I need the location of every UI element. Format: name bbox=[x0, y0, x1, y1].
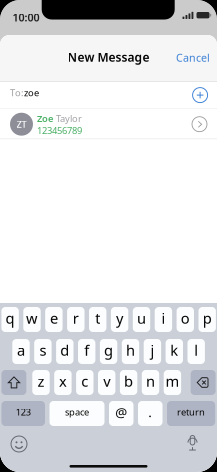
staticText: h bbox=[126, 340, 135, 360]
button[interactable]: a bbox=[12, 339, 30, 364]
button[interactable]: c bbox=[76, 370, 93, 395]
staticText: Taylor bbox=[56, 112, 82, 125]
button[interactable]: j bbox=[144, 339, 161, 364]
button[interactable]: l bbox=[187, 339, 205, 364]
staticText: ZT bbox=[16, 118, 26, 130]
button[interactable]: q bbox=[1, 307, 19, 332]
button[interactable]: space bbox=[49, 401, 104, 426]
button[interactable]: 123 bbox=[1, 401, 45, 426]
staticText: s bbox=[39, 340, 46, 360]
staticText: w bbox=[26, 308, 38, 328]
staticText: r bbox=[73, 308, 79, 328]
staticText: Zoe bbox=[37, 112, 53, 125]
staticText: c bbox=[81, 371, 88, 391]
button[interactable]: u bbox=[133, 307, 150, 332]
staticText: l bbox=[194, 340, 198, 360]
button[interactable]: Add contact bbox=[192, 87, 208, 103]
staticText: a bbox=[17, 340, 25, 360]
button[interactable]: e bbox=[45, 307, 63, 332]
staticText: i bbox=[161, 308, 165, 328]
button[interactable]: Dictation bbox=[186, 435, 199, 452]
button[interactable]: v bbox=[98, 370, 115, 395]
staticText: Cancel bbox=[176, 50, 210, 65]
button[interactable]: @ bbox=[109, 401, 133, 426]
staticText: k bbox=[170, 340, 178, 360]
button[interactable]: Shift bbox=[1, 370, 26, 395]
staticText: t bbox=[95, 308, 100, 328]
button[interactable]: r bbox=[67, 307, 84, 332]
button[interactable]: Emoji keyboard bbox=[11, 436, 27, 452]
staticText: y bbox=[116, 308, 123, 328]
staticText: u bbox=[137, 308, 146, 328]
button[interactable]: x bbox=[54, 370, 72, 395]
button[interactable]: ZT bbox=[0, 109, 217, 139]
staticText: 123 bbox=[16, 406, 31, 418]
button[interactable]: k bbox=[166, 339, 183, 364]
staticText: o bbox=[181, 308, 190, 328]
staticText: b bbox=[124, 371, 133, 391]
button[interactable]: h bbox=[122, 339, 139, 364]
staticText: g bbox=[104, 340, 113, 360]
staticText: return bbox=[177, 406, 205, 418]
staticText: n bbox=[146, 371, 155, 391]
staticText: @ bbox=[115, 403, 127, 421]
staticText: e bbox=[50, 308, 58, 328]
staticText: zoe bbox=[24, 86, 39, 99]
button[interactable]: f bbox=[78, 339, 95, 364]
staticText: z bbox=[37, 371, 44, 391]
button[interactable]: p bbox=[198, 307, 216, 332]
button[interactable]: return bbox=[167, 401, 215, 426]
staticText: To: bbox=[10, 86, 24, 99]
staticText: j bbox=[150, 340, 154, 360]
button[interactable]: Cancel bbox=[170, 44, 216, 70]
button[interactable]: w bbox=[23, 307, 41, 332]
staticText: 123456789 bbox=[37, 124, 82, 137]
staticText: q bbox=[6, 308, 15, 328]
button[interactable]: d bbox=[56, 339, 73, 364]
button[interactable]: . bbox=[138, 401, 162, 426]
staticText: p bbox=[203, 308, 212, 328]
button[interactable]: z bbox=[32, 370, 50, 395]
button[interactable]: b bbox=[120, 370, 137, 395]
button[interactable]: m bbox=[164, 370, 181, 395]
button[interactable]: n bbox=[142, 370, 159, 395]
button[interactable]: g bbox=[100, 339, 117, 364]
staticText: New Message bbox=[67, 49, 149, 65]
staticText: space bbox=[65, 406, 89, 418]
button[interactable]: i bbox=[155, 307, 172, 332]
button[interactable]: Delete bbox=[191, 370, 216, 395]
button[interactable]: y bbox=[111, 307, 128, 332]
staticText: 10:00 bbox=[12, 10, 39, 24]
staticText: x bbox=[59, 371, 67, 391]
staticText: f bbox=[84, 340, 89, 360]
button[interactable]: o bbox=[177, 307, 194, 332]
staticText: v bbox=[103, 371, 110, 391]
staticText: m bbox=[165, 371, 179, 391]
staticText: d bbox=[60, 340, 69, 360]
staticText: . bbox=[148, 403, 152, 421]
button[interactable]: t bbox=[89, 307, 106, 332]
button[interactable]: s bbox=[34, 339, 52, 364]
